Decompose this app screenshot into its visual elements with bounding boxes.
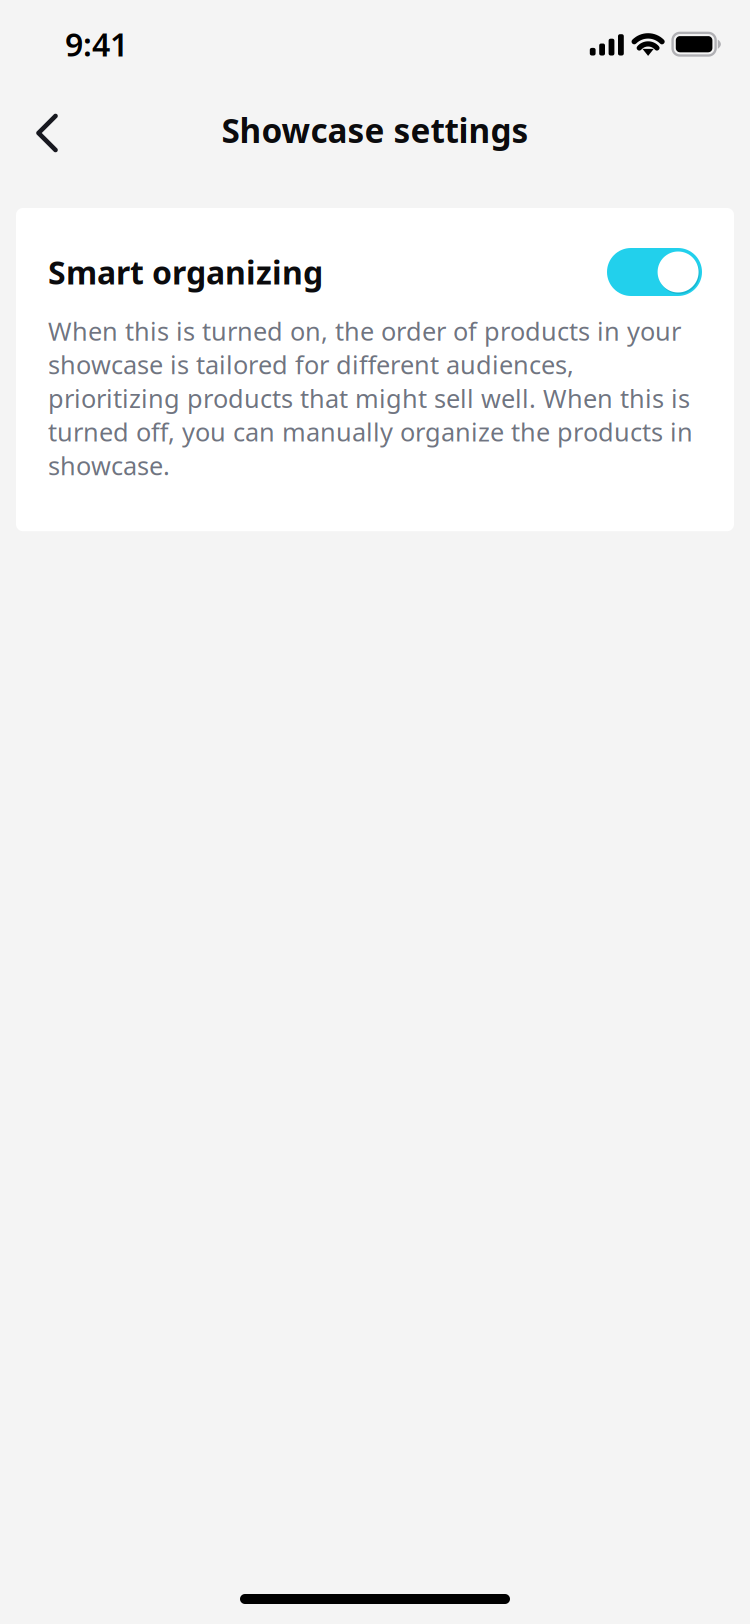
staticText: Smart organizing	[48, 251, 323, 293]
button[interactable]: Back	[19, 102, 75, 158]
staticText: 9:41	[65, 23, 128, 65]
staticText: When this is turned on, the order of pro…	[48, 314, 693, 482]
button[interactable]: Smart organizing	[607, 248, 702, 296]
staticText: Showcase settings	[221, 108, 528, 152]
